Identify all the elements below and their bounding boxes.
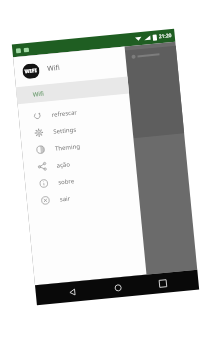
staticText: Theming [55,142,80,153]
staticText: sobre [58,177,75,187]
staticText: Settings [53,126,77,136]
staticText: ação [56,160,71,170]
staticText: WIFI [24,67,38,75]
button[interactable]: refrescar [18,98,131,126]
button[interactable]: WIFI [13,47,127,87]
staticText: Wifi [32,89,45,99]
button[interactable]: Home [107,276,128,298]
staticText: sair [59,194,71,203]
button[interactable]: Recent apps [151,272,173,294]
button[interactable]: Back [61,281,83,303]
button[interactable]: Wifi [16,76,129,104]
button[interactable]: Settings [20,115,133,143]
button[interactable]: sobre [25,166,138,194]
staticText: refrescar [51,108,78,119]
button[interactable]: sair [26,183,139,211]
button[interactable]: ação [23,149,136,177]
button[interactable]: Theming [21,132,134,160]
staticText: Wifi [47,63,61,74]
staticText: 21:20 [158,32,172,40]
